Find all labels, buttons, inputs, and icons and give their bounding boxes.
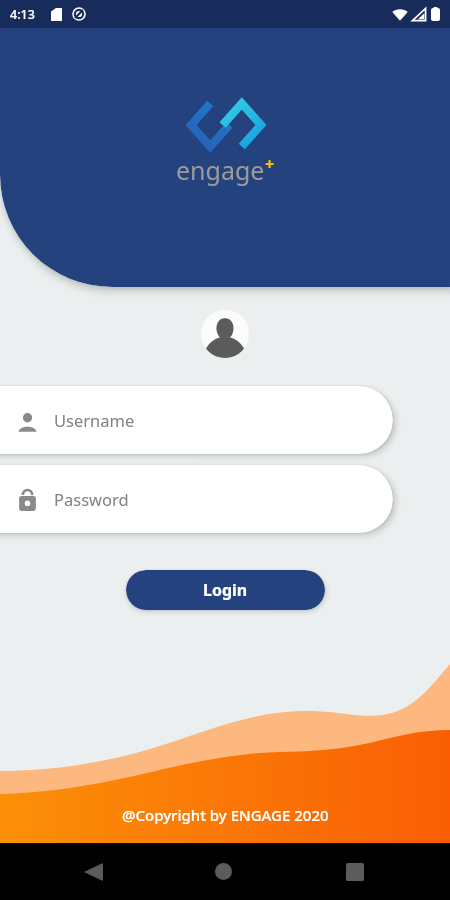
staticText: @Copyright by ENGAGE 2020 — [122, 805, 329, 825]
button[interactable]: Login — [126, 570, 325, 610]
staticText: engage — [176, 153, 265, 187]
staticText: + — [265, 153, 275, 175]
staticText: Login — [203, 579, 248, 601]
button[interactable]: Password — [0, 465, 393, 533]
staticText: Password — [54, 488, 129, 510]
staticText: Username — [54, 409, 135, 431]
button[interactable]: Back — [73, 851, 114, 892]
button[interactable]: Username — [0, 386, 393, 454]
staticText: 4:13 — [10, 6, 35, 23]
button[interactable]: Recents — [334, 851, 375, 892]
button[interactable]: Home — [203, 851, 244, 892]
